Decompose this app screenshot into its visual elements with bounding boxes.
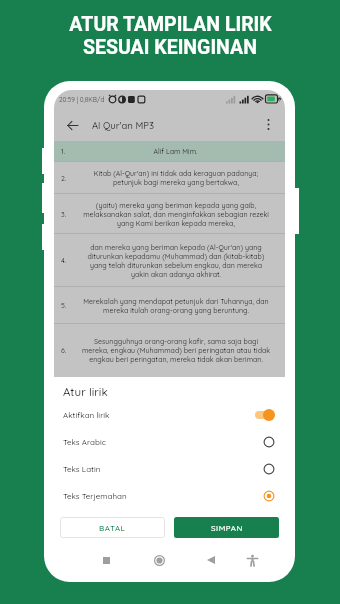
button[interactable]: SIMPAN xyxy=(174,517,279,538)
staticText: 20:59 | 0,8KB/d xyxy=(59,95,105,103)
staticText: ATUR TAMPILAN LIRIK xyxy=(69,13,272,36)
staticText: 6. xyxy=(61,346,67,355)
staticText: Teks Terjemahan xyxy=(63,491,127,501)
staticText: Teks Arabic xyxy=(63,437,106,447)
staticText: Teks Latin xyxy=(63,464,101,474)
button[interactable]: 1. xyxy=(54,141,285,162)
staticText: Aktifkan lirik xyxy=(63,410,110,420)
button[interactable]: 4. xyxy=(54,234,285,287)
staticText: 2. xyxy=(61,174,67,183)
staticText: Kitab (Al-Qur'an) ini tidak ada keraguan… xyxy=(81,169,271,187)
staticText: 3. xyxy=(61,210,67,219)
button[interactable]: 2. xyxy=(54,162,285,194)
button[interactable]: Recent apps xyxy=(95,546,117,574)
button[interactable]: More options xyxy=(260,116,277,133)
staticText: Merekalah yang mendapat petunjuk dari Tu… xyxy=(81,297,271,315)
button[interactable]: Teks Arabic xyxy=(54,428,285,455)
staticText: 4. xyxy=(61,256,67,265)
staticText: Alif Lam Mim. xyxy=(80,147,271,156)
staticText: SIMPAN xyxy=(211,523,243,533)
staticText: (yaitu) mereka yang beriman kepada yang … xyxy=(81,201,271,228)
button[interactable]: Teks Terjemahan xyxy=(54,482,285,509)
button[interactable]: Back xyxy=(200,546,222,574)
button[interactable]: 3. xyxy=(54,194,285,234)
button[interactable]: Aktifkan lirik xyxy=(54,401,285,428)
button[interactable]: Teks Latin xyxy=(54,455,285,482)
staticText: 5. xyxy=(61,301,67,310)
staticText: SESUAI KEINGINAN xyxy=(83,36,257,59)
staticText: Sesungguhnya orang-orang kafir, sama saj… xyxy=(81,337,271,364)
button[interactable]: Accessibility xyxy=(241,546,263,574)
staticText: Atur lirik xyxy=(63,384,108,398)
staticText: BATAL xyxy=(99,523,126,533)
button[interactable]: 5. xyxy=(54,287,285,324)
staticText: dan mereka yang beriman kepada (Al-Qur'a… xyxy=(81,243,271,279)
button[interactable]: 6. xyxy=(54,324,285,377)
staticText: 1. xyxy=(61,147,66,156)
button[interactable]: Home xyxy=(148,546,170,574)
staticText: Al Qur'an MP3 xyxy=(92,119,155,131)
button[interactable]: Back xyxy=(65,116,80,134)
button[interactable]: BATAL xyxy=(60,517,165,538)
